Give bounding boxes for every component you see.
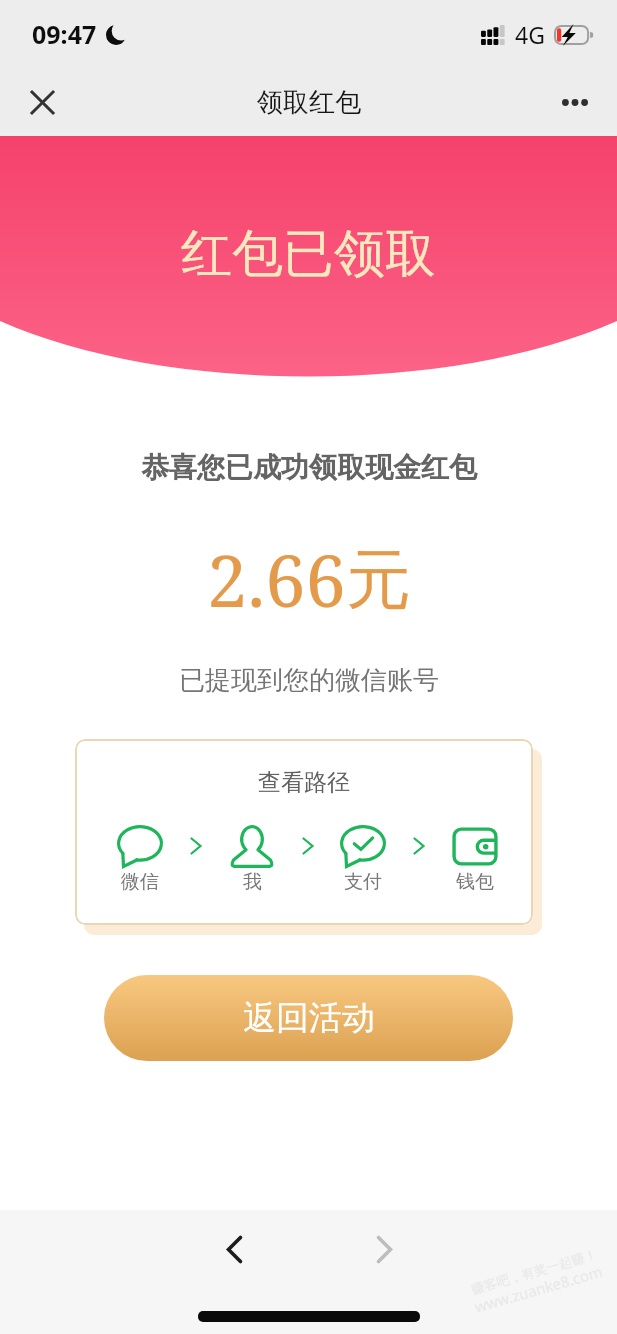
staticText: 09:47 bbox=[32, 17, 97, 51]
staticText: 赚客吧，有奖一起赚！ bbox=[469, 1246, 599, 1297]
button[interactable]: Close bbox=[12, 72, 72, 132]
staticText: 领取红包 bbox=[257, 86, 361, 119]
staticText: 我 bbox=[243, 870, 262, 894]
staticText: 元 bbox=[346, 539, 411, 621]
button[interactable]: Back bbox=[198, 1213, 270, 1285]
button[interactable]: 返回活动 bbox=[104, 975, 513, 1061]
staticText: 返回活动 bbox=[243, 997, 375, 1039]
staticText: 2.66 bbox=[207, 530, 346, 628]
staticText: 查看路径 bbox=[258, 768, 350, 797]
staticText: 钱包 bbox=[456, 870, 494, 894]
staticText: 微信 bbox=[121, 870, 159, 894]
staticText: 4G bbox=[515, 19, 545, 50]
staticText: 支付 bbox=[344, 870, 382, 894]
staticText: 恭喜您已成功领取现金红包 bbox=[141, 450, 477, 485]
staticText: 已提现到您的微信账号 bbox=[179, 664, 439, 697]
button[interactable]: Forward bbox=[348, 1213, 420, 1285]
staticText: www.zuanke8.com bbox=[472, 1261, 605, 1317]
staticText: 红包已领取 bbox=[181, 222, 436, 286]
button[interactable]: More options bbox=[545, 72, 605, 132]
